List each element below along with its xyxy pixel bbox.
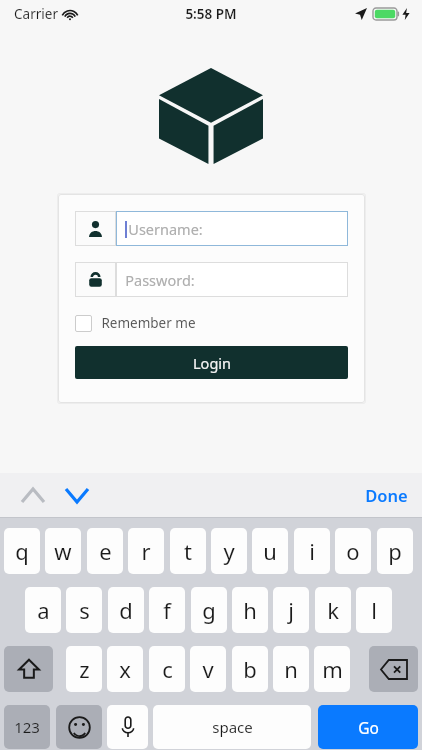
- button[interactable]: Username:: [75, 211, 348, 246]
- button[interactable]: Done: [365, 484, 408, 506]
- staticText: 5:58 PM: [185, 5, 237, 23]
- button[interactable]: i: [294, 528, 330, 574]
- button[interactable]: b: [232, 646, 268, 692]
- staticText: m: [322, 654, 343, 684]
- staticText: Carrier: [14, 5, 58, 23]
- button[interactable]: o: [335, 528, 371, 574]
- staticText: t: [184, 536, 192, 566]
- staticText: Done: [365, 484, 408, 506]
- staticText: e: [99, 536, 112, 566]
- staticText: Login: [193, 353, 231, 373]
- staticText: n: [284, 654, 298, 684]
- staticText: q: [15, 536, 29, 566]
- button[interactable]: 123: [4, 705, 50, 749]
- button[interactable]: t: [170, 528, 206, 574]
- staticText: g: [202, 595, 216, 625]
- button[interactable]: c: [149, 646, 185, 692]
- staticText: j: [288, 595, 294, 625]
- button[interactable]: q: [4, 528, 40, 574]
- staticText: s: [79, 595, 90, 625]
- button[interactable]: Remember me: [75, 314, 196, 332]
- button[interactable]: e: [87, 528, 123, 574]
- button[interactable]: p: [377, 528, 413, 574]
- button[interactable]: n: [273, 646, 309, 692]
- button[interactable]: z: [66, 646, 102, 692]
- button[interactable]: g: [191, 587, 227, 633]
- button[interactable]: Shift: [4, 646, 53, 692]
- staticText: Go: [358, 717, 379, 738]
- staticText: a: [37, 595, 50, 625]
- staticText: Password:: [125, 270, 195, 290]
- button[interactable]: h: [232, 587, 268, 633]
- button[interactable]: m: [314, 646, 350, 692]
- staticText: 123: [14, 717, 40, 737]
- staticText: u: [263, 536, 277, 566]
- staticText: i: [309, 536, 315, 566]
- staticText: h: [243, 595, 257, 625]
- button[interactable]: x: [107, 646, 143, 692]
- button[interactable]: d: [108, 587, 144, 633]
- button[interactable]: space: [153, 705, 311, 749]
- button[interactable]: s: [66, 587, 102, 633]
- button[interactable]: Go: [318, 705, 418, 749]
- staticText: x: [119, 654, 131, 684]
- button[interactable]: j: [273, 587, 309, 633]
- staticText: Username:: [128, 219, 203, 239]
- button[interactable]: a: [25, 587, 61, 633]
- button[interactable]: v: [190, 646, 226, 692]
- staticText: l: [371, 595, 377, 625]
- staticText: y: [223, 536, 235, 566]
- staticText: space: [212, 717, 253, 737]
- staticText: r: [141, 536, 151, 566]
- staticText: z: [79, 654, 90, 684]
- button[interactable]: k: [315, 587, 351, 633]
- staticText: p: [388, 536, 402, 566]
- staticText: Remember me: [101, 314, 196, 332]
- button[interactable]: u: [252, 528, 288, 574]
- button[interactable]: Emoji: [56, 705, 102, 749]
- staticText: w: [54, 536, 72, 566]
- button[interactable]: l: [356, 587, 392, 633]
- staticText: k: [327, 595, 339, 625]
- staticText: f: [163, 595, 171, 625]
- button[interactable]: Dictation: [107, 705, 148, 749]
- button[interactable]: f: [149, 587, 185, 633]
- button[interactable]: Previous field: [14, 478, 52, 512]
- button[interactable]: y: [211, 528, 247, 574]
- staticText: v: [202, 654, 214, 684]
- staticText: b: [243, 654, 257, 684]
- staticText: d: [119, 595, 133, 625]
- button[interactable]: r: [128, 528, 164, 574]
- staticText: o: [346, 536, 360, 566]
- button[interactable]: Password:: [75, 262, 348, 297]
- button[interactable]: w: [45, 528, 81, 574]
- button[interactable]: Login: [75, 346, 348, 379]
- button[interactable]: Next field: [58, 478, 96, 512]
- staticText: c: [162, 654, 173, 684]
- button[interactable]: Backspace: [369, 646, 418, 692]
